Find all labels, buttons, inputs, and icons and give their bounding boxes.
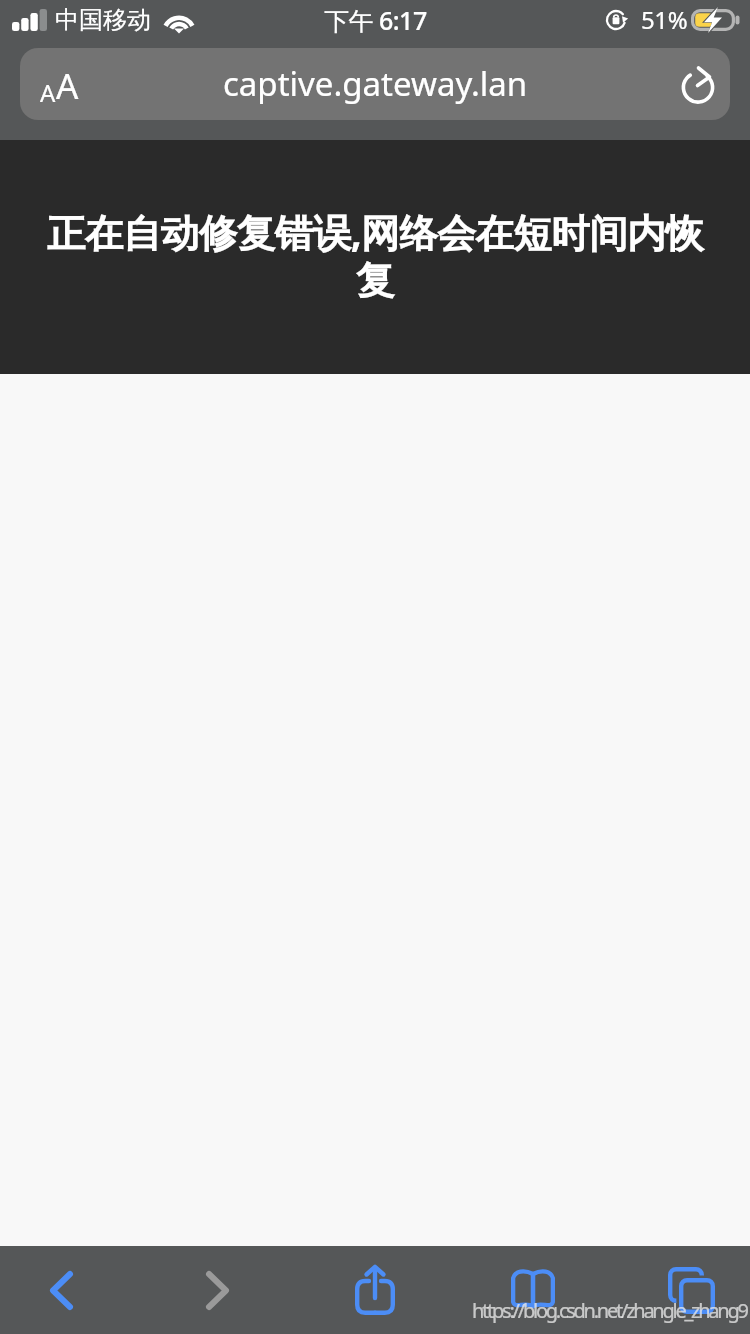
button[interactable]: Tabs xyxy=(653,1246,729,1334)
button[interactable]: Bookmarks xyxy=(495,1246,571,1334)
other: Reload xyxy=(673,61,717,105)
staticText: 中国移动 xyxy=(55,5,151,35)
staticText: A xyxy=(56,62,79,110)
staticText: A xyxy=(40,76,56,109)
staticText: 51% xyxy=(641,3,688,36)
button[interactable]: A xyxy=(20,48,730,120)
button[interactable]: Forward xyxy=(179,1246,255,1334)
other: Rotation lock xyxy=(606,8,632,33)
staticText: 下午 6:17 xyxy=(324,3,427,37)
staticText: 正在自动修复错误,网络会在短时间内恢 复 xyxy=(0,206,750,306)
button[interactable]: Back xyxy=(23,1246,99,1334)
button[interactable]: Share xyxy=(337,1246,413,1334)
staticText: captive.gateway.lan xyxy=(223,61,528,106)
staticText: https://blog.csdn.net/zhangle_zhang9 xyxy=(472,1297,747,1324)
